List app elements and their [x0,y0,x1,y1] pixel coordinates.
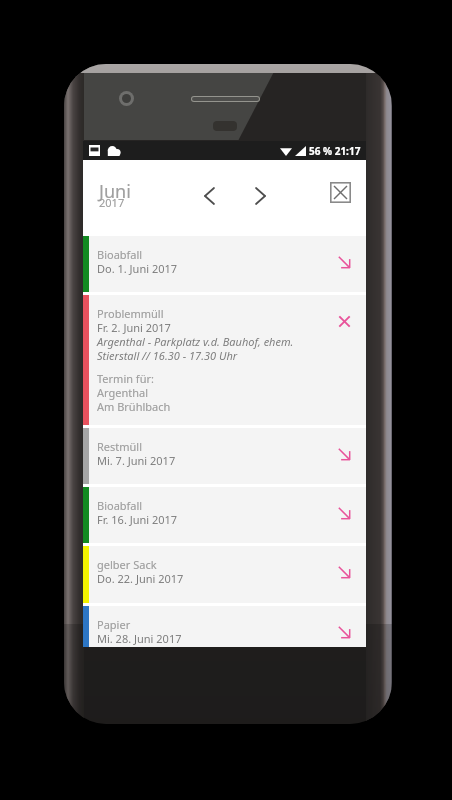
staticText: Stierstall // 16.30 - 17.30 Uhr [97,348,238,363]
staticText: Fr. 2. Juni 2017 [97,320,171,335]
button[interactable]: Previous month [195,180,225,220]
staticText: 2017 [99,195,125,210]
staticText: Argenthal [97,385,149,400]
staticText: Fr. 16. Juni 2017 [97,512,178,527]
staticText: gelber Sack [97,557,157,572]
staticText: Papier [97,617,131,632]
staticText: Juni [99,179,131,204]
staticText: Do. 22. Juni 2017 [97,571,184,586]
staticText: Mi. 7. Juni 2017 [97,453,176,468]
staticText: Termin für: [97,371,154,386]
staticText: Bioabfall [97,247,143,262]
staticText: Problemmüll [97,306,164,321]
button[interactable]: Bioabfall [83,487,366,543]
staticText: 56 % 21:17 [309,144,361,158]
staticText: Argenthal - Parkplatz v.d. Bauhof, ehem. [97,334,294,349]
button[interactable]: Close [330,182,351,203]
staticText: Am Brühlbach [97,399,171,414]
button[interactable]: gelber Sack [83,546,366,603]
staticText: Bioabfall [97,498,143,513]
button[interactable]: Papier [83,606,366,647]
button[interactable]: Restmüll [83,428,366,484]
staticText: Restmüll [97,439,143,454]
staticText: Mi. 28. Juni 2017 [97,631,182,646]
button[interactable]: Bioabfall [83,236,366,292]
button[interactable]: Next month [246,180,276,220]
staticText: Do. 1. Juni 2017 [97,261,178,276]
button[interactable]: Problemmüll [83,295,366,425]
